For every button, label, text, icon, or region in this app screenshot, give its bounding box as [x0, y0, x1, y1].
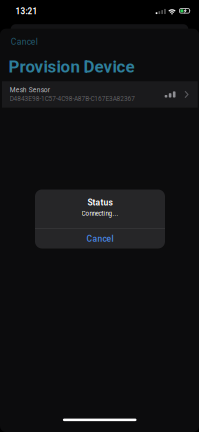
staticText: Provision Device [9, 57, 135, 77]
staticText: Connecting... [81, 210, 118, 217]
staticText: Status [87, 197, 112, 207]
button[interactable]: Cancel [35, 229, 165, 248]
staticText: 13:21 [15, 7, 37, 16]
button[interactable]: Mesh Sensor [2, 81, 198, 108]
staticText: Mesh Sensor [10, 86, 50, 94]
staticText: D4843E98-1C57-4C98-A87B-C167E3A82367 [10, 95, 135, 102]
button[interactable]: Cancel [8, 34, 44, 50]
staticText: Cancel [86, 234, 113, 244]
staticText: Cancel [11, 37, 38, 47]
